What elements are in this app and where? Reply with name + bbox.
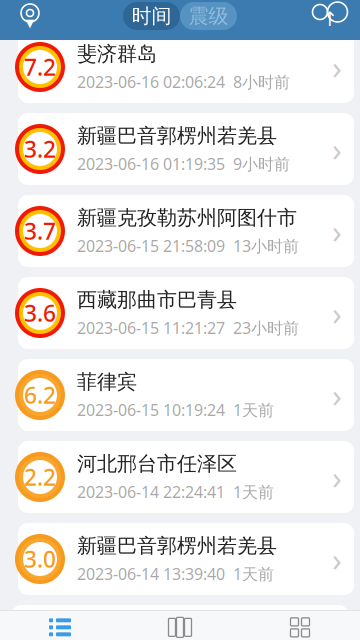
staticText: 2023-06-15 10:19:24: [77, 399, 225, 420]
button[interactable]: 列表: [0, 610, 120, 640]
staticText: ›: [332, 128, 342, 170]
staticText: 斐济群岛: [77, 42, 157, 66]
staticText: 6.2: [24, 380, 56, 410]
staticText: 时间: [131, 4, 171, 28]
staticText: 震级: [188, 4, 228, 28]
button[interactable]: 定位: [8, 0, 52, 40]
staticText: 3.2: [24, 134, 56, 164]
staticText: 9小时前: [233, 153, 290, 174]
button[interactable]: 更多: [240, 610, 360, 640]
staticText: ↑: [321, 8, 338, 30]
staticText: 3.7: [24, 216, 56, 246]
button[interactable]: 3.7: [0, 195, 360, 267]
staticText: 23小时前: [233, 317, 299, 338]
staticText: 菲律宾: [77, 370, 137, 394]
staticText: 西藏那曲市巴青县: [77, 288, 237, 312]
button[interactable]: 2.2: [0, 441, 360, 513]
staticText: 新疆克孜勒苏州阿图什市: [77, 206, 297, 230]
staticText: 2023-06-16 02:06:24: [77, 71, 225, 92]
staticText: 1天前: [233, 563, 274, 584]
staticText: 河北邢台市任泽区: [77, 452, 237, 476]
staticText: 2.2: [24, 462, 56, 492]
staticText: ›: [332, 538, 342, 580]
staticText: 3.0: [24, 544, 56, 574]
staticText: 2023-06-14 22:24:41: [77, 481, 225, 502]
staticText: ▾: [25, 13, 34, 32]
staticText: 新疆巴音郭楞州若羌县: [77, 124, 277, 148]
staticText: 1天前: [233, 481, 274, 502]
button[interactable]: 时间: [123, 2, 180, 30]
staticText: ›: [332, 46, 342, 88]
button[interactable]: 3.2: [0, 113, 360, 185]
staticText: 2023-06-15 21:58:09: [77, 235, 225, 256]
staticText: 2023-06-16 01:19:35: [77, 153, 225, 174]
button[interactable]: 上传: [308, 0, 352, 40]
staticText: 7.2: [24, 52, 56, 82]
staticText: ›: [332, 374, 342, 416]
staticText: ›: [332, 210, 342, 252]
staticText: 13小时前: [233, 235, 299, 256]
staticText: 8小时前: [233, 71, 290, 92]
staticText: 3.6: [24, 298, 56, 328]
staticText: ›: [332, 456, 342, 498]
staticText: 2023-06-14 13:39:40: [77, 563, 225, 584]
button[interactable]: 3.0: [0, 523, 360, 595]
staticText: ›: [332, 292, 342, 334]
button[interactable]: 震级: [180, 2, 237, 30]
staticText: 新疆巴音郭楞州若羌县: [77, 534, 277, 558]
button[interactable]: 7.2: [0, 31, 360, 103]
staticText: 2023-06-15 11:21:27: [77, 317, 225, 338]
button[interactable]: 6.2: [0, 359, 360, 431]
button[interactable]: 3.6: [0, 277, 360, 349]
button[interactable]: 地图: [120, 610, 240, 640]
staticText: 1天前: [233, 399, 274, 420]
